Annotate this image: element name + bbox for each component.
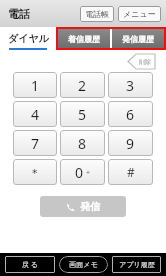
button[interactable]: 2 [60,72,105,98]
staticText: 着信履歴 [68,34,100,44]
staticText: 3 [126,76,135,95]
staticText: 2 [78,76,87,95]
staticText: ＊ [29,165,41,180]
staticText: 6 [126,105,135,124]
button[interactable]: 8 [60,130,105,156]
button[interactable]: 0 [60,159,105,185]
staticText: 電話 [8,7,30,21]
button[interactable]: 画面メモ [59,256,108,273]
staticText: ダイヤル [8,32,49,45]
staticText: アプリ履歴 [119,260,155,269]
staticText: メニュー [123,9,156,19]
staticText: + [86,168,91,178]
staticText: 5 [78,105,87,124]
button[interactable]: 6 [108,101,153,127]
staticText: 4 [31,105,40,124]
staticText: 8 [78,134,87,153]
button[interactable]: 3 [108,72,153,98]
button[interactable]: 5 [60,101,105,127]
button[interactable]: 4 [13,101,57,127]
staticText: 発信履歴 [122,34,154,44]
staticText: # [127,164,135,180]
button[interactable]: 9 [108,130,153,156]
staticText: 発信 [80,200,100,213]
staticText: 9 [126,134,135,153]
button[interactable]: 電話帳 [80,6,114,22]
staticText: 戻 る [22,260,38,270]
staticText: 削除 [139,58,151,66]
button[interactable]: ＊ [13,159,57,185]
button[interactable]: 戻 る [5,256,55,273]
button[interactable]: 発信 [40,196,126,217]
staticText: 1 [31,76,40,95]
button[interactable]: 削除 [128,54,155,69]
staticText: 画面メモ [69,260,98,269]
button[interactable]: 1 [13,72,57,98]
button[interactable]: # [108,159,153,185]
staticText: 電話帳 [85,9,109,19]
button[interactable]: 着信履歴 [58,29,110,48]
staticText: 0 [75,163,84,182]
button[interactable]: メニュー [118,6,161,22]
button[interactable]: アプリ履歴 [112,256,161,273]
button[interactable]: 7 [13,130,57,156]
button[interactable]: 発信履歴 [112,29,164,48]
staticText: 7 [31,134,40,153]
button[interactable]: ダイヤル [0,27,56,51]
